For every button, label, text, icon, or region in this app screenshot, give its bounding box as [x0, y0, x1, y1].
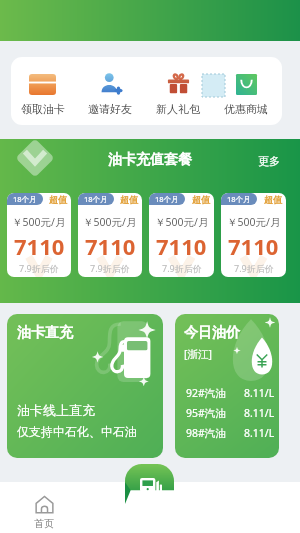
staticText: 优惠商城 — [224, 102, 268, 116]
staticText: 更多 — [258, 154, 280, 168]
staticText: 7.9折后价 — [19, 262, 59, 274]
button[interactable]: 邀请好友 — [76, 57, 144, 125]
button[interactable]: 加油 — [125, 464, 174, 504]
button[interactable]: 油卡直充 — [7, 314, 163, 458]
staticText: 邀请好友 — [88, 102, 132, 116]
staticText: 今日油价 — [184, 324, 240, 342]
staticText: 7110 — [14, 231, 65, 261]
staticText: 18个月 — [155, 194, 179, 204]
staticText: 超值 — [120, 194, 138, 205]
staticText: 7.9折后价 — [162, 262, 202, 274]
staticText: 18个月 — [84, 194, 108, 204]
button[interactable]: 今日油价 — [175, 314, 279, 458]
staticText: 8.11/L — [244, 406, 275, 420]
staticText: 油卡充值套餐 — [108, 151, 192, 169]
staticText: 首页 — [34, 517, 54, 530]
button[interactable]: 18个月 — [7, 193, 71, 277]
staticText: 超值 — [49, 194, 67, 205]
staticText: ￥500元/月 — [12, 215, 66, 229]
staticText: 95#汽油 — [186, 406, 226, 420]
staticText: 7110 — [156, 231, 207, 261]
staticText: 18个月 — [227, 194, 251, 204]
staticText: 8.11/L — [244, 386, 275, 400]
staticText: ￥500元/月 — [155, 215, 209, 229]
staticText: 超值 — [192, 194, 210, 205]
button[interactable]: 优惠商城 — [212, 57, 280, 125]
staticText: [浙江] — [184, 347, 212, 361]
button[interactable]: 更多 — [256, 152, 282, 170]
staticText: 新人礼包 — [156, 102, 200, 116]
button[interactable]: 18个月 — [221, 193, 286, 277]
staticText: 超值 — [264, 194, 282, 205]
staticText: ￥500元/月 — [83, 215, 137, 229]
button[interactable]: 领取油卡 — [11, 57, 76, 125]
staticText: 领取油卡 — [21, 102, 65, 116]
staticText: ￥500元/月 — [227, 215, 281, 229]
staticText: 7110 — [228, 231, 279, 261]
staticText: 98#汽油 — [186, 426, 226, 440]
staticText: 7110 — [85, 231, 136, 261]
staticText: 7.9折后价 — [234, 262, 274, 274]
button[interactable]: 18个月 — [78, 193, 142, 277]
staticText: 92#汽油 — [186, 386, 226, 400]
staticText: 油卡直充 — [17, 324, 73, 342]
button[interactable]: 新人礼包 — [144, 57, 212, 125]
staticText: 7.9折后价 — [90, 262, 130, 274]
button[interactable]: 18个月 — [149, 193, 214, 277]
button[interactable]: 首页 — [30, 491, 58, 533]
staticText: 8.11/L — [244, 426, 275, 440]
staticText: 18个月 — [13, 194, 37, 204]
staticText: 油卡线上直充 — [17, 402, 95, 418]
staticText: 仅支持中石化、中石油 — [17, 424, 137, 439]
